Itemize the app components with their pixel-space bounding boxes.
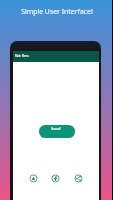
staticText: Send xyxy=(51,126,61,131)
button[interactable]: Main Menu xyxy=(13,51,99,62)
button[interactable]: Send xyxy=(39,125,75,138)
staticText: Main Menu xyxy=(15,54,29,58)
staticText: Simple User Interface! xyxy=(21,7,93,16)
button[interactable]: Share xyxy=(74,174,83,183)
button[interactable]: Facebook xyxy=(51,174,60,183)
button[interactable]: Play xyxy=(29,174,38,183)
